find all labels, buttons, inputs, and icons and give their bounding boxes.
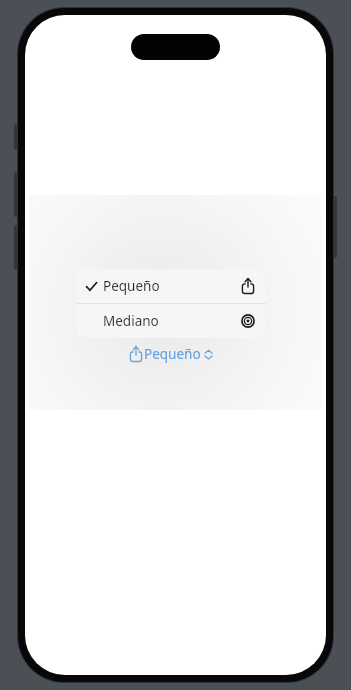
other: Silence switch <box>14 124 19 150</box>
other: Share <box>241 278 255 294</box>
staticText: Mediano <box>103 312 159 330</box>
staticText: Pequeño <box>144 345 201 363</box>
other: Medium size <box>241 314 255 328</box>
other: Volume up <box>14 172 19 217</box>
staticText: Pequeño <box>103 277 160 295</box>
button[interactable]: Pequeño <box>76 343 266 365</box>
button[interactable]: Mediano <box>76 304 266 338</box>
other: Power <box>332 196 337 258</box>
other: Volume down <box>14 225 19 270</box>
button[interactable]: Pequeño <box>76 269 266 303</box>
